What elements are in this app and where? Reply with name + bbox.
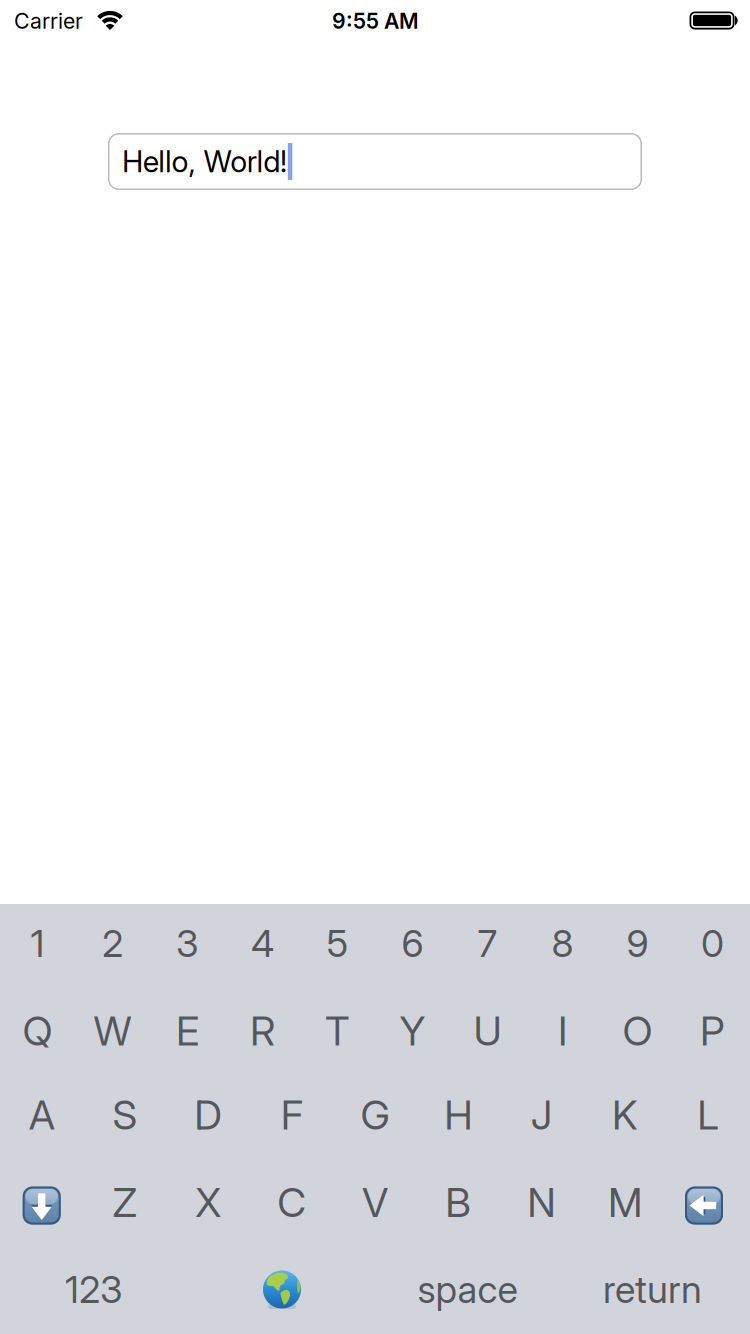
staticText: W [93,1007,131,1055]
button[interactable]: P [675,988,750,1074]
staticText: X [195,1179,221,1226]
staticText: Carrier [14,8,83,34]
button[interactable]: G [333,1072,417,1158]
button[interactable]: Q [0,988,75,1074]
staticText: 6 [401,921,423,965]
staticText: P [700,1007,725,1055]
button[interactable]: 1 [0,900,75,986]
staticText: 8 [551,921,573,965]
button[interactable]: V [333,1159,417,1245]
staticText: J [531,1091,553,1139]
button[interactable]: 0 [675,900,750,986]
staticText: A [29,1091,55,1139]
staticText: Y [399,1007,425,1055]
button[interactable]: 8 [525,900,600,986]
staticText: 9 [626,921,648,965]
button[interactable]: L [667,1072,750,1158]
button[interactable]: 6 [375,900,450,986]
button[interactable]: Next keyboard [197,1246,367,1332]
staticText: U [473,1007,501,1055]
button[interactable]: 123 [9,1246,179,1332]
staticText: G [360,1091,389,1139]
button[interactable]: Hello, World! [108,133,642,190]
button[interactable]: return [567,1246,737,1332]
staticText: Q [22,1007,52,1055]
staticText: 0 [701,921,724,965]
button[interactable]: X [167,1159,250,1245]
staticText: 1 [30,921,44,965]
staticText: N [527,1179,556,1226]
button[interactable]: F [250,1072,333,1158]
button[interactable]: E [150,988,225,1074]
staticText: I [558,1007,567,1055]
button[interactable]: O [600,988,675,1074]
button[interactable]: N [500,1159,583,1245]
button[interactable]: Shift [0,1162,83,1248]
button[interactable]: 4 [225,900,300,986]
button[interactable]: 2 [75,900,150,986]
staticText: M [608,1179,642,1226]
staticText: E [176,1007,199,1055]
staticText: S [112,1091,137,1139]
staticText: Z [112,1179,137,1226]
staticText: 2 [102,921,123,965]
button[interactable]: C [250,1159,333,1245]
staticText: O [622,1007,652,1055]
button[interactable]: H [417,1072,500,1158]
staticText: space [417,1267,517,1311]
staticText: L [697,1091,719,1139]
button[interactable]: U [450,988,525,1074]
button[interactable]: 9 [600,900,675,986]
button[interactable]: R [225,988,300,1074]
button[interactable]: I [525,988,600,1074]
staticText: F [281,1091,303,1139]
staticText: 9:55 AM [332,8,419,34]
staticText: return [603,1267,702,1311]
staticText: D [194,1091,222,1139]
button[interactable]: 3 [150,900,225,986]
staticText: 3 [176,921,199,965]
staticText: Hello, World! [122,144,288,179]
staticText: 5 [326,921,348,965]
button[interactable]: M [583,1159,667,1245]
staticText: B [445,1179,471,1226]
button[interactable]: Y [375,988,450,1074]
button[interactable]: Delete [662,1162,746,1248]
staticText: K [612,1091,638,1139]
button[interactable]: Z [83,1159,167,1245]
button[interactable]: T [300,988,375,1074]
button[interactable]: D [167,1072,250,1158]
button[interactable]: B [417,1159,500,1245]
button[interactable]: 7 [450,900,525,986]
staticText: T [325,1007,350,1055]
button[interactable]: A [0,1072,83,1158]
staticText: V [362,1179,388,1226]
staticText: 7 [477,921,497,965]
button[interactable]: W [75,988,150,1074]
button[interactable]: space [382,1246,552,1332]
button[interactable]: K [583,1072,667,1158]
button[interactable]: S [83,1072,167,1158]
staticText: 123 [65,1267,123,1311]
button[interactable]: J [500,1072,583,1158]
staticText: H [444,1091,472,1139]
staticText: C [277,1179,306,1226]
button[interactable]: 5 [300,900,375,986]
staticText: R [250,1007,275,1055]
staticText: 4 [251,921,274,965]
